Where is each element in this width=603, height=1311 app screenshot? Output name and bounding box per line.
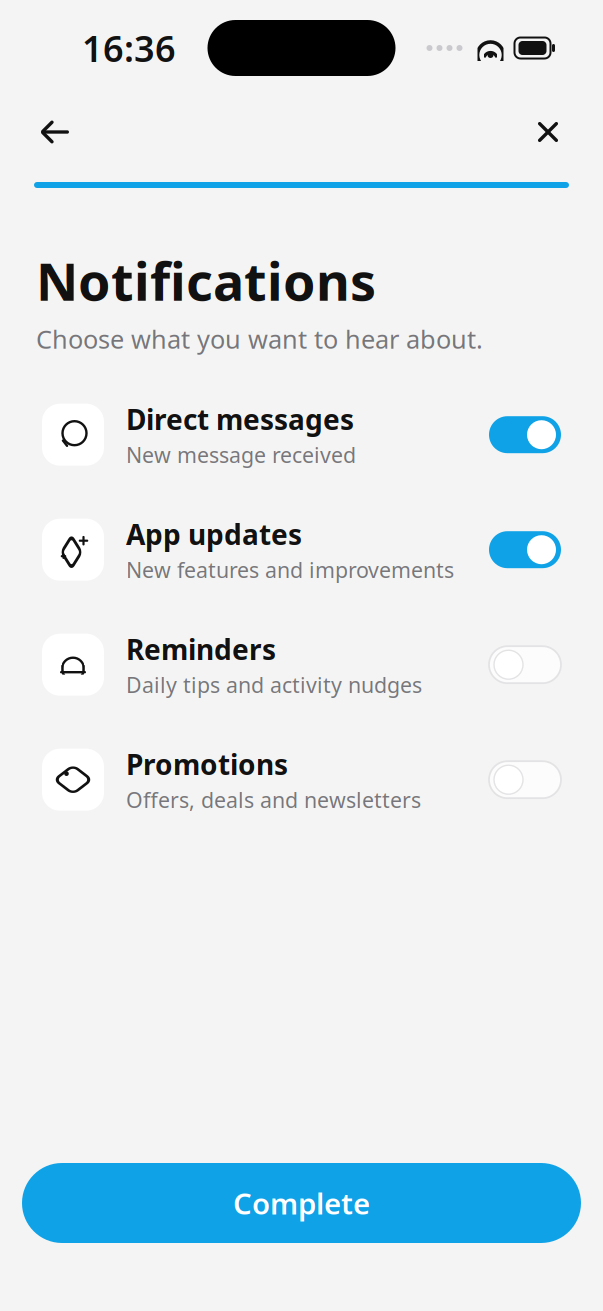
button[interactable]: Direct messages <box>0 396 603 474</box>
button[interactable]: Reminders <box>0 626 603 704</box>
staticText: Promotions <box>126 745 288 783</box>
staticText: New features and improvements <box>126 556 454 584</box>
staticText: Reminders <box>126 630 276 668</box>
staticText: 16:36 <box>82 24 176 72</box>
button[interactable]: Complete <box>22 1163 581 1243</box>
staticText: App updates <box>126 515 302 553</box>
button[interactable]: Back <box>28 105 82 159</box>
staticText: Daily tips and activity nudges <box>126 671 422 699</box>
staticText: Notifications <box>36 246 376 315</box>
staticText: Direct messages <box>126 400 354 438</box>
staticText: Offers, deals and newsletters <box>126 786 421 814</box>
staticText: New message received <box>126 441 356 469</box>
staticText: Choose what you want to hear about. <box>36 322 483 356</box>
staticText: Complete <box>233 1183 370 1222</box>
button[interactable]: Promotions <box>0 741 603 819</box>
button[interactable]: App updates <box>0 511 603 589</box>
button[interactable]: Close <box>521 105 575 159</box>
